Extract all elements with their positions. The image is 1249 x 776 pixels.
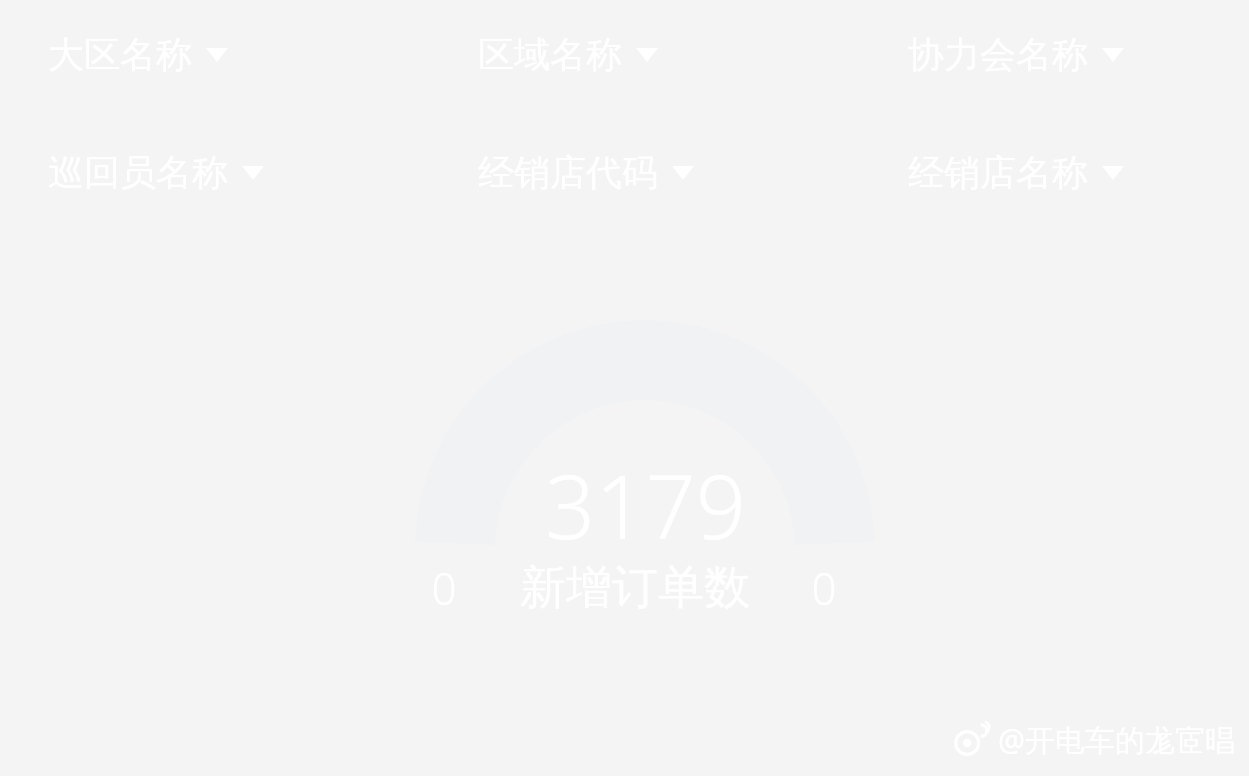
other: Expand 协力会名称: [1102, 48, 1124, 62]
other: Expand 经销店名称: [1102, 166, 1124, 180]
staticText: 区域名称: [478, 32, 622, 77]
staticText: 协力会名称: [908, 32, 1088, 77]
staticText: @开电车的尨宧晿: [998, 719, 1235, 760]
other: Expand 区域名称: [636, 48, 658, 62]
staticText: 3179: [545, 445, 746, 565]
button[interactable]: Weibo: [952, 719, 1235, 760]
staticText: 新增订单数: [520, 559, 750, 617]
button[interactable]: 经销店代码: [474, 146, 698, 199]
staticText: 大区名称: [48, 32, 192, 77]
button[interactable]: 区域名称: [474, 28, 662, 81]
button[interactable]: 大区名称: [44, 28, 232, 81]
other: Expand 大区名称: [206, 48, 228, 62]
button[interactable]: 经销店名称: [904, 146, 1128, 199]
other: Expand 巡回员名称: [242, 166, 264, 180]
button[interactable]: 协力会名称: [904, 28, 1128, 81]
other: Expand 经销店代码: [672, 166, 694, 180]
staticText: 经销店名称: [908, 150, 1088, 195]
staticText: 巡回员名称: [48, 150, 228, 195]
staticText: 经销店代码: [478, 150, 658, 195]
other: Weibo: [952, 721, 990, 759]
button[interactable]: 巡回员名称: [44, 146, 268, 199]
button[interactable]: 3179: [445, 445, 845, 565]
